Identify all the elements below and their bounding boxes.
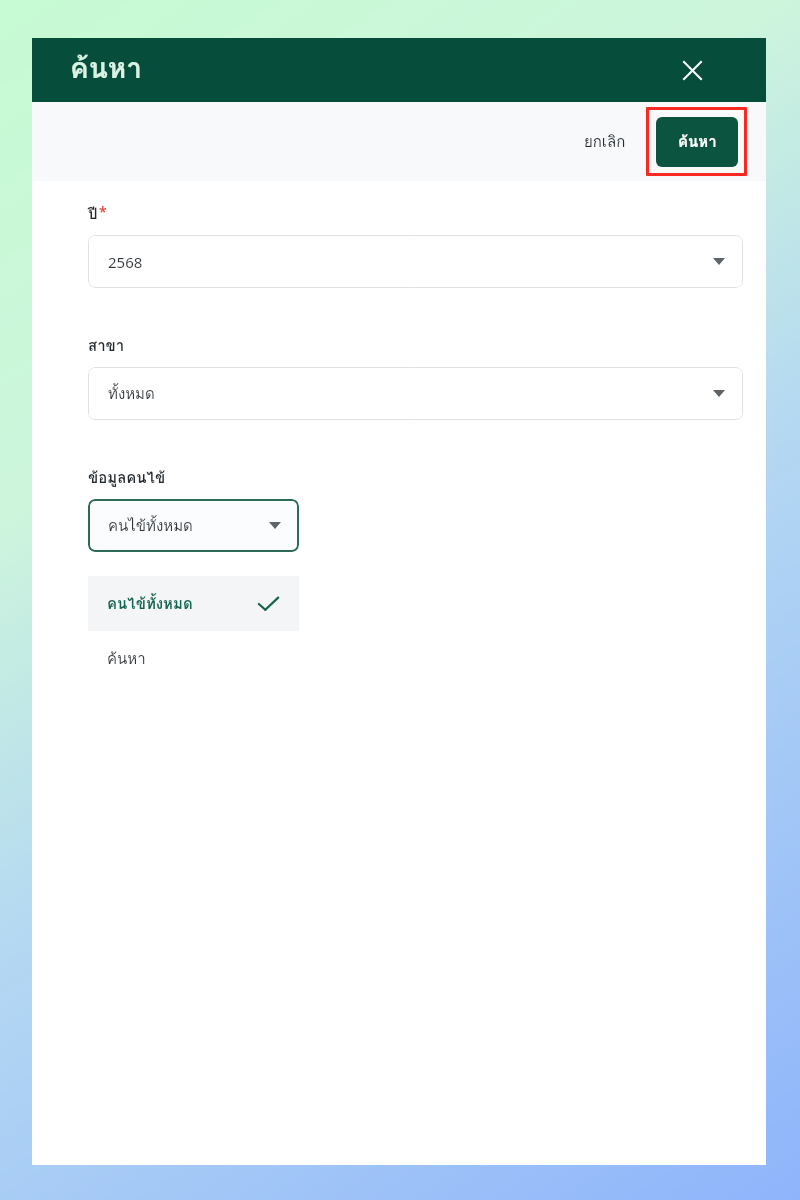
staticText: ค้นหา (107, 647, 146, 671)
staticText: ค้นหา (678, 130, 717, 154)
staticText: ปี (88, 202, 98, 226)
staticText: คนไข้ทั้งหมด (107, 592, 193, 616)
button[interactable]: ทั้งหมด (88, 367, 743, 420)
staticText: * (99, 202, 107, 221)
staticText: ยกเลิก (584, 130, 626, 154)
button[interactable]: คนไข้ทั้งหมด (88, 576, 299, 631)
staticText: คนไข้ทั้งหมด (108, 514, 193, 538)
staticText: ค้นหา (70, 46, 143, 91)
staticText: ข้อมูลคนไข้ (88, 466, 166, 490)
button[interactable]: 2568 (88, 235, 743, 288)
staticText: ทั้งหมด (108, 382, 155, 406)
staticText: 2568 (108, 252, 143, 272)
button[interactable]: ยกเลิก (575, 121, 635, 163)
button[interactable]: Close (673, 51, 711, 89)
staticText: สาขา (88, 334, 125, 358)
button[interactable]: ค้นหา (88, 631, 299, 687)
button[interactable]: คนไข้ทั้งหมด (88, 499, 299, 552)
button[interactable]: ค้นหา (656, 117, 738, 167)
